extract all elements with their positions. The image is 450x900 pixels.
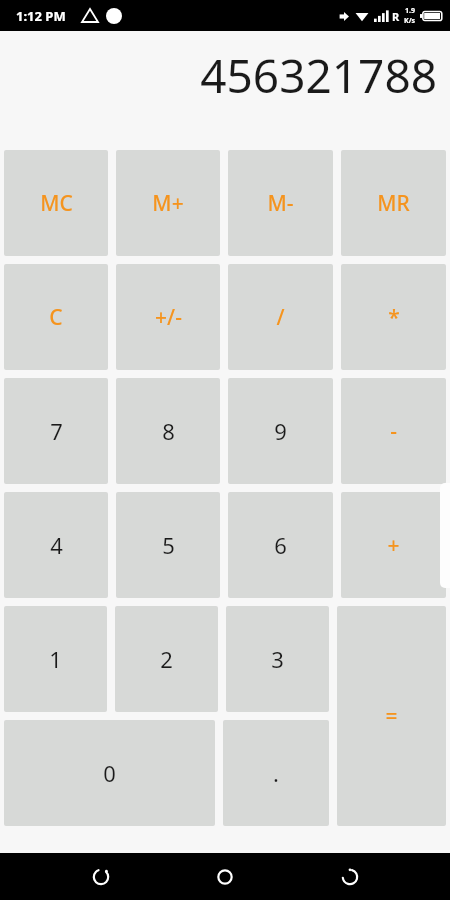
staticText: . xyxy=(273,758,279,788)
button[interactable]: / xyxy=(228,264,333,370)
button[interactable]: * xyxy=(341,264,446,370)
button[interactable]: C xyxy=(4,264,108,370)
button[interactable]: MC xyxy=(4,150,108,256)
button[interactable]: 5 xyxy=(116,492,220,598)
button[interactable]: 8 xyxy=(116,378,220,484)
button[interactable]: MR xyxy=(341,150,446,256)
staticText: 1 xyxy=(49,644,62,674)
button[interactable]: Home xyxy=(201,853,249,900)
button[interactable]: 3 xyxy=(226,606,329,712)
button[interactable]: 4 xyxy=(4,492,108,598)
button[interactable]: = xyxy=(337,606,446,826)
staticText: MC xyxy=(40,189,73,218)
button[interactable]: 7 xyxy=(4,378,108,484)
staticText: MR xyxy=(377,189,410,218)
staticText: / xyxy=(276,303,285,332)
staticText: 5 xyxy=(162,530,175,560)
staticText: K/s xyxy=(404,16,416,26)
staticText: 6 xyxy=(274,530,287,560)
button[interactable]: 0 xyxy=(4,720,215,826)
button[interactable]: 2 xyxy=(115,606,218,712)
button[interactable]: M+ xyxy=(116,150,220,256)
staticText: 7 xyxy=(50,416,63,446)
button[interactable]: - xyxy=(341,378,446,484)
staticText: +/- xyxy=(155,303,182,332)
staticText: 4 xyxy=(50,530,63,560)
staticText: 2 xyxy=(160,644,173,674)
staticText: - xyxy=(390,417,397,446)
button[interactable]: 1 xyxy=(4,606,107,712)
staticText: + xyxy=(387,531,400,560)
button[interactable]: Recent apps xyxy=(326,853,374,900)
staticText: 3 xyxy=(271,644,284,674)
staticText: M- xyxy=(267,189,294,218)
staticText: R xyxy=(392,9,400,24)
staticText: = xyxy=(385,702,398,731)
button[interactable]: 9 xyxy=(228,378,333,484)
staticText: 456321788 xyxy=(200,44,437,107)
button[interactable]: +/- xyxy=(116,264,220,370)
staticText: 0 xyxy=(103,758,116,788)
staticText: 8 xyxy=(162,416,175,446)
staticText: C xyxy=(49,303,63,332)
button[interactable]: Back xyxy=(77,853,125,900)
staticText: * xyxy=(388,303,400,332)
button[interactable]: M- xyxy=(228,150,333,256)
button[interactable]: . xyxy=(223,720,329,826)
staticText: 1:12 PM xyxy=(16,7,66,25)
button[interactable]: 6 xyxy=(228,492,333,598)
staticText: 9 xyxy=(274,416,287,446)
button[interactable]: + xyxy=(341,492,446,598)
staticText: 1.9 xyxy=(405,6,415,16)
staticText: M+ xyxy=(152,189,184,218)
